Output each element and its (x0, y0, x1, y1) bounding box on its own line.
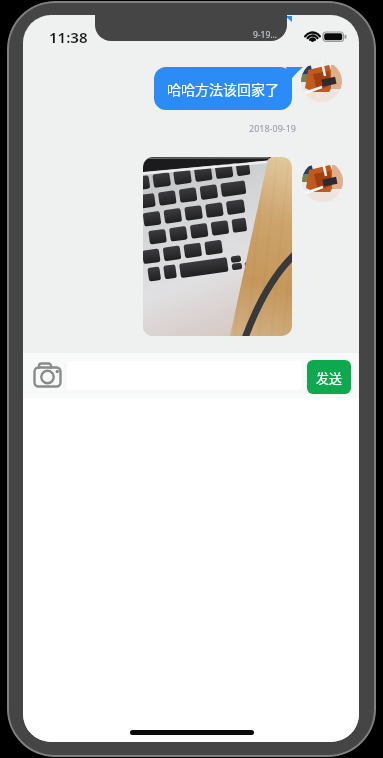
staticText: 哈哈方法该回家了 (167, 79, 279, 99)
button[interactable]: 哈哈方法该回家了 (154, 67, 292, 110)
button[interactable] (143, 157, 292, 336)
button[interactable] (301, 61, 342, 102)
button[interactable]: 发送 (307, 360, 351, 394)
staticText: 2018-09-19 (249, 122, 296, 134)
button[interactable] (302, 161, 343, 202)
staticText: 9-19… (253, 29, 278, 41)
staticText: 11:38 (49, 27, 88, 47)
staticText: 发送 (316, 368, 343, 387)
button[interactable] (31, 361, 64, 390)
